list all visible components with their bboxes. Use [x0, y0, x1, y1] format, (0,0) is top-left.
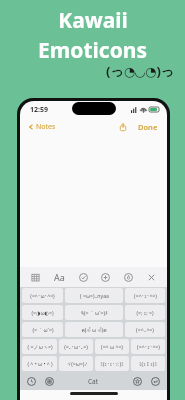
- button[interactable]: Aa: [52, 269, 67, 285]
- button[interactable]: Grid: [29, 271, 42, 284]
- button[interactable]: (=^･ｪ･^=): [131, 339, 165, 354]
- button[interactable]: ヾ(=ω=)ﾉ: [59, 356, 93, 371]
- staticText: (= ｀ω´=): [32, 326, 54, 333]
- staticText: (=^‥^=): [136, 326, 154, 333]
- button[interactable]: ( =ノωヽ=): [22, 339, 57, 354]
- button[interactable]: Share: [116, 120, 130, 134]
- button[interactable]: Done: [136, 122, 160, 132]
- button[interactable]: Add: [99, 271, 112, 284]
- staticText: (=; ｪ; =): [136, 309, 154, 316]
- staticText: (=^ ω ^=): [101, 343, 123, 350]
- button[interactable]: ﾐ(ｪ I ｪ)ﾐ: [131, 356, 165, 371]
- staticText: ฅ(⌯͒ ω ⌯͒)ฅ: [81, 326, 107, 334]
- button[interactable]: ﾐ(ｪ･ｪ･☆)ﾐ: [95, 356, 129, 371]
- button[interactable]: Draw: [122, 271, 135, 284]
- staticText: ﾐ(ｪ I ｪ)ﾐ: [139, 360, 157, 367]
- button[interactable]: Favorites: [131, 375, 144, 388]
- staticText: 12:59: [30, 105, 48, 115]
- staticText: Done: [138, 122, 158, 132]
- button[interactable]: (=^ ω ^=): [95, 339, 129, 354]
- staticText: Notes: [36, 122, 56, 132]
- staticText: Cat: [88, 377, 99, 386]
- staticText: (=◑ω◐=): [31, 309, 54, 316]
- button[interactable]: Close: [145, 271, 158, 284]
- staticText: Kawaii: [58, 6, 128, 35]
- staticText: ( ^ • ω • ^ ): [27, 360, 53, 367]
- button[interactable]: (= ｀ω´=): [22, 322, 63, 337]
- button[interactable]: ٩(= ｀ω´=)۶: [65, 305, 123, 320]
- staticText: (=^･ｪ･^=): [137, 343, 160, 350]
- staticText: ﾐ(ｪ･ｪ･☆)ﾐ: [100, 360, 124, 367]
- staticText: (=｡･ω･｡=): [64, 343, 88, 350]
- button[interactable]: ฅ(⌯͒ ω ⌯͒)ฅ: [65, 322, 123, 337]
- staticText: Aa: [54, 271, 65, 283]
- button[interactable]: (=^･ｪ･^=): [125, 288, 165, 303]
- button[interactable]: Notes: [27, 122, 57, 132]
- staticText: ٩(= ｀ω´=)۶: [81, 309, 108, 316]
- button[interactable]: Categories: [43, 375, 56, 388]
- staticText: ( =ノωヽ=): [27, 343, 53, 350]
- button[interactable]: Check: [77, 271, 90, 284]
- button[interactable]: ( =ω=)..nyaa: [65, 288, 123, 303]
- button[interactable]: (=; ｪ; =): [125, 305, 165, 320]
- staticText: (っ◔◡◔)っ: [106, 62, 175, 80]
- button[interactable]: ( ^ • ω • ^ ): [22, 356, 57, 371]
- button[interactable]: (=｡･ω･｡=): [59, 339, 93, 354]
- button[interactable]: Recent: [25, 375, 38, 388]
- button[interactable]: (=^･ω･^=): [22, 288, 63, 303]
- staticText: (=^･ｪ･^=): [134, 292, 157, 299]
- button[interactable]: Return: [149, 375, 162, 388]
- button[interactable]: (=◑ω◐=): [22, 305, 63, 320]
- staticText: ヾ(=ω=)ﾉ: [66, 360, 87, 367]
- staticText: ( =ω=)..nyaa: [80, 292, 109, 299]
- staticText: (=^･ω･^=): [30, 292, 55, 299]
- staticText: Emoticons: [38, 36, 147, 65]
- button[interactable]: (=^‥^=): [125, 322, 165, 337]
